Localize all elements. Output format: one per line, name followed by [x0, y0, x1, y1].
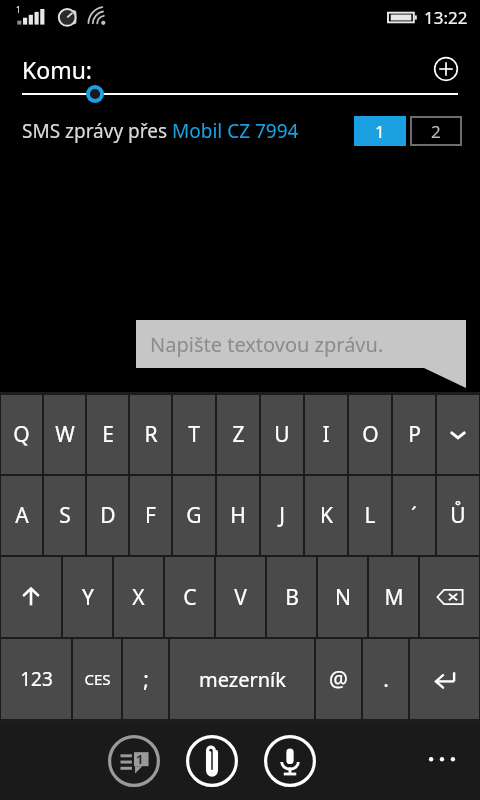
staticText: H	[230, 501, 246, 530]
button[interactable]: 1	[354, 116, 406, 146]
button[interactable]: Backspace	[420, 557, 479, 637]
button[interactable]: B	[267, 557, 316, 637]
staticText: 1	[136, 750, 144, 768]
button[interactable]: @	[316, 639, 361, 719]
button[interactable]: P	[393, 395, 435, 474]
button[interactable]: I	[305, 395, 347, 474]
staticText: M	[384, 583, 404, 612]
staticText: Napište textovou zprávu.	[150, 331, 384, 358]
staticText: 13:22	[424, 6, 468, 29]
button[interactable]: ´	[393, 476, 435, 555]
button[interactable]: Napište textovou zprávu.	[136, 320, 466, 368]
button[interactable]: L	[349, 476, 391, 555]
staticText: P	[408, 420, 421, 449]
button[interactable]: Voice input	[262, 733, 318, 789]
staticText: X	[132, 583, 145, 612]
staticText: N	[335, 583, 351, 612]
button[interactable]: M	[369, 557, 418, 637]
button[interactable]: W	[44, 395, 85, 474]
button[interactable]: More characters	[437, 395, 479, 474]
staticText: L	[364, 501, 376, 530]
staticText: Y	[82, 583, 94, 612]
staticText: Ů	[450, 501, 466, 530]
button[interactable]: D	[87, 476, 128, 555]
button[interactable]: Z	[217, 395, 259, 474]
button[interactable]: C	[165, 557, 214, 637]
staticText: .	[383, 665, 389, 694]
button[interactable]: mezerník	[170, 639, 314, 719]
staticText: Z	[232, 420, 245, 449]
staticText: ´	[411, 501, 417, 530]
staticText: F	[145, 501, 156, 530]
staticText: O	[362, 420, 379, 449]
button[interactable]: Shift	[1, 557, 61, 637]
button[interactable]: N	[318, 557, 367, 637]
staticText: G	[186, 501, 202, 530]
button[interactable]: 2	[410, 116, 462, 146]
staticText: CES	[84, 669, 111, 689]
button[interactable]: K	[305, 476, 347, 555]
staticText: Q	[13, 420, 30, 449]
staticText: 1	[375, 120, 385, 143]
button[interactable]: .	[363, 639, 408, 719]
button[interactable]: F	[130, 476, 171, 555]
staticText: D	[100, 501, 116, 530]
button[interactable]: R	[130, 395, 171, 474]
button[interactable]: Enter	[410, 639, 479, 719]
staticText: K	[320, 501, 333, 530]
button[interactable]: Mobil CZ 7994	[172, 118, 299, 144]
button[interactable]: T	[173, 395, 215, 474]
button[interactable]: More options	[418, 737, 466, 785]
staticText: S	[59, 501, 71, 530]
staticText: E	[102, 420, 114, 449]
button[interactable]: J	[261, 476, 303, 555]
staticText: R	[144, 420, 158, 449]
button[interactable]: S	[44, 476, 85, 555]
button[interactable]: Message count	[106, 733, 162, 789]
button[interactable]: V	[216, 557, 265, 637]
staticText: A	[15, 501, 29, 530]
button[interactable]: Y	[63, 557, 112, 637]
staticText: I	[322, 420, 330, 449]
staticText: T	[188, 420, 200, 449]
staticText: mezerník	[199, 666, 286, 693]
button[interactable]: G	[173, 476, 215, 555]
button[interactable]: Ů	[437, 476, 479, 555]
staticText: U	[274, 420, 290, 449]
staticText: J	[279, 501, 285, 530]
button[interactable]: 123	[1, 639, 71, 719]
staticText: C	[183, 583, 197, 612]
button[interactable]: Attach	[184, 733, 240, 789]
staticText: Komu:	[22, 54, 93, 85]
staticText: @	[329, 665, 348, 694]
button[interactable]: A	[1, 476, 42, 555]
staticText: 123	[20, 666, 53, 692]
button[interactable]: CES	[73, 639, 121, 719]
staticText: B	[285, 583, 299, 612]
staticText: SMS zprávy přes	[22, 118, 172, 144]
button[interactable]: O	[349, 395, 391, 474]
staticText: 1	[16, 4, 21, 15]
button[interactable]: U	[261, 395, 303, 474]
staticText: V	[234, 583, 247, 612]
button[interactable]: Add recipient	[430, 53, 462, 85]
staticText: 2	[431, 120, 441, 143]
staticText: ;	[143, 665, 149, 694]
button[interactable]: E	[87, 395, 128, 474]
button[interactable]: H	[217, 476, 259, 555]
button[interactable]: Q	[1, 395, 42, 474]
staticText: W	[55, 420, 75, 449]
button[interactable]: ;	[123, 639, 168, 719]
button[interactable]: X	[114, 557, 163, 637]
